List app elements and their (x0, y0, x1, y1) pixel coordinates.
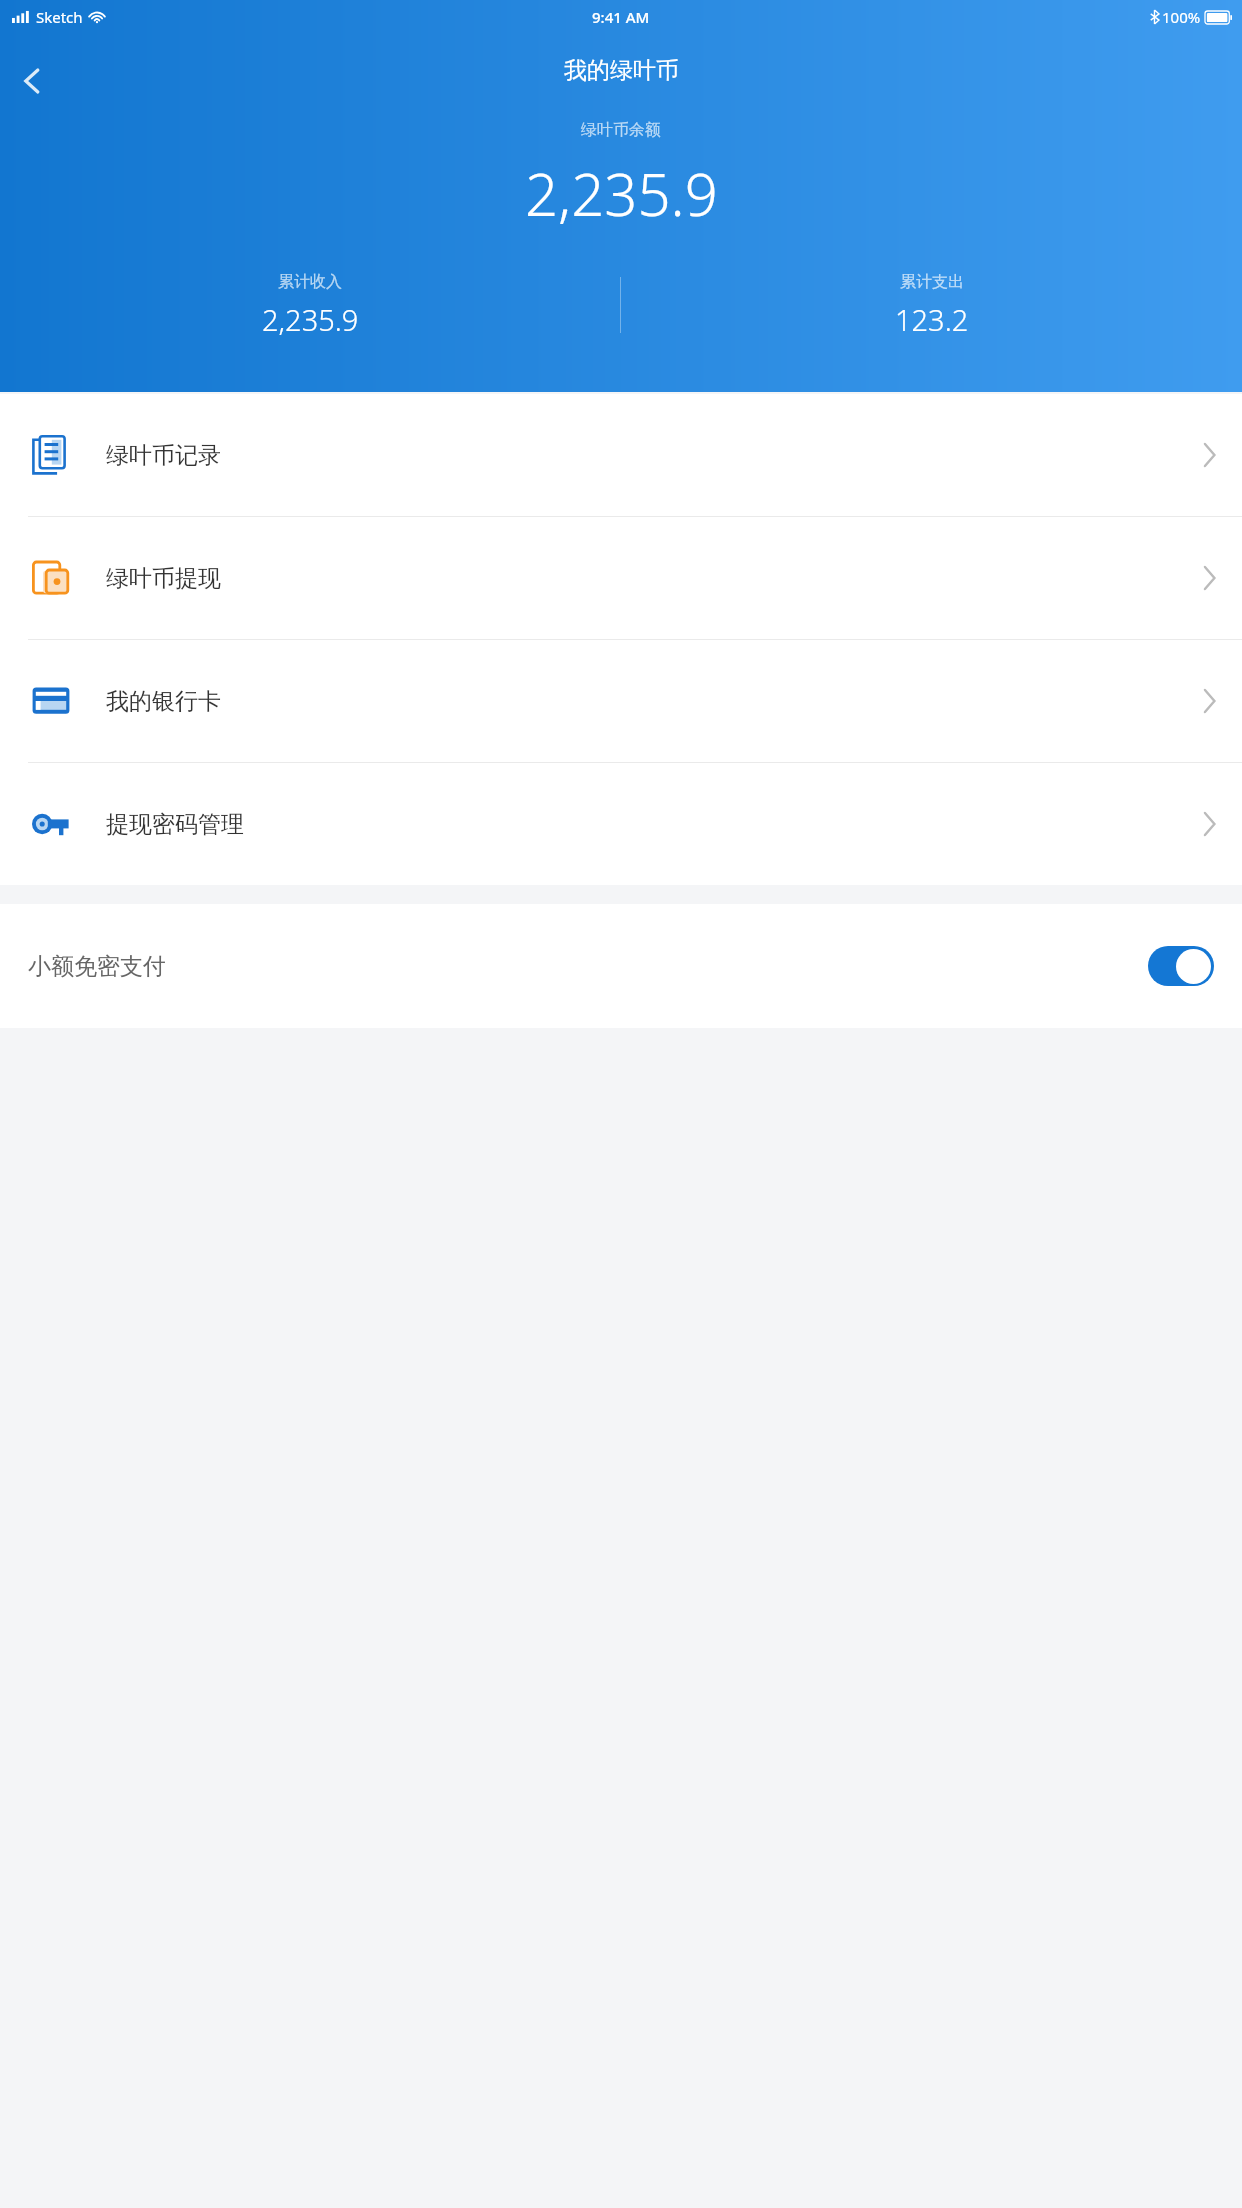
staticText: 123.2 (895, 300, 969, 339)
staticText: 9:41 AM (592, 7, 650, 27)
button[interactable]: 小额免密支付开关 (1148, 946, 1214, 986)
staticText: Sketch (36, 7, 83, 27)
staticText: 累计支出 (900, 272, 964, 292)
staticText: 累计收入 (278, 272, 342, 292)
staticText: 100% (1162, 7, 1201, 27)
staticText: 2,235.9 (262, 300, 359, 339)
button[interactable]: 小额免密支付 (0, 904, 1242, 1028)
staticText: 提现密码管理 (106, 810, 1203, 839)
button[interactable]: 提现密码管理 (0, 763, 1242, 885)
button[interactable]: 绿叶币记录 (0, 394, 1242, 516)
button[interactable]: 绿叶币提现 (0, 517, 1242, 639)
button[interactable]: 我的银行卡 (0, 640, 1242, 762)
staticText: 绿叶币余额 (581, 120, 661, 140)
staticText: 绿叶币提现 (106, 564, 1203, 593)
staticText: 我的绿叶币 (564, 56, 679, 85)
staticText: 绿叶币记录 (106, 441, 1203, 470)
staticText: 我的银行卡 (106, 687, 1203, 716)
staticText: 2,235.9 (525, 154, 718, 233)
staticText: 小额免密支付 (28, 952, 1148, 981)
button[interactable]: Back (0, 48, 66, 114)
